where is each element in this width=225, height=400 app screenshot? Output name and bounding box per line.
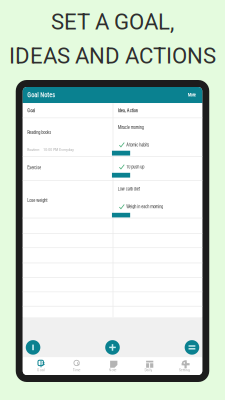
staticText: SET A GOAL, (51, 9, 174, 35)
staticText: Setting (179, 367, 190, 372)
button[interactable]: Time (59, 357, 95, 375)
staticText: Weigh in each morning (126, 204, 163, 209)
staticText: Miracle morning (118, 125, 144, 130)
staticText: Idea, Action (118, 108, 138, 113)
button[interactable]: Add (105, 340, 120, 355)
button[interactable]: Setting (166, 357, 202, 375)
staticText: Note (108, 367, 116, 372)
staticText: Low carb diet (118, 186, 140, 192)
staticText: Reading books (27, 130, 51, 135)
staticText: Lose weight (27, 198, 47, 203)
button[interactable]: More (186, 90, 198, 100)
staticText: Daily (144, 367, 152, 372)
staticText: Time (73, 367, 81, 372)
staticText: Routine: 10:00 PM Everyday (27, 147, 74, 152)
staticText: Goal (37, 367, 45, 372)
button[interactable]: Goal (23, 357, 59, 375)
staticText: More (188, 92, 196, 98)
staticText: 10 push up (126, 164, 144, 170)
staticText: IDEAS AND ACTIONS (9, 43, 216, 69)
button[interactable]: Daily (130, 357, 166, 375)
staticText: Exercise (27, 165, 41, 170)
button[interactable]: List options (185, 340, 199, 355)
button[interactable]: Note (95, 357, 130, 375)
button[interactable]: Filter (26, 340, 40, 355)
staticText: Atomic habits (126, 142, 149, 147)
staticText: Goal (27, 108, 35, 113)
staticText: Goal Notes (27, 91, 55, 99)
